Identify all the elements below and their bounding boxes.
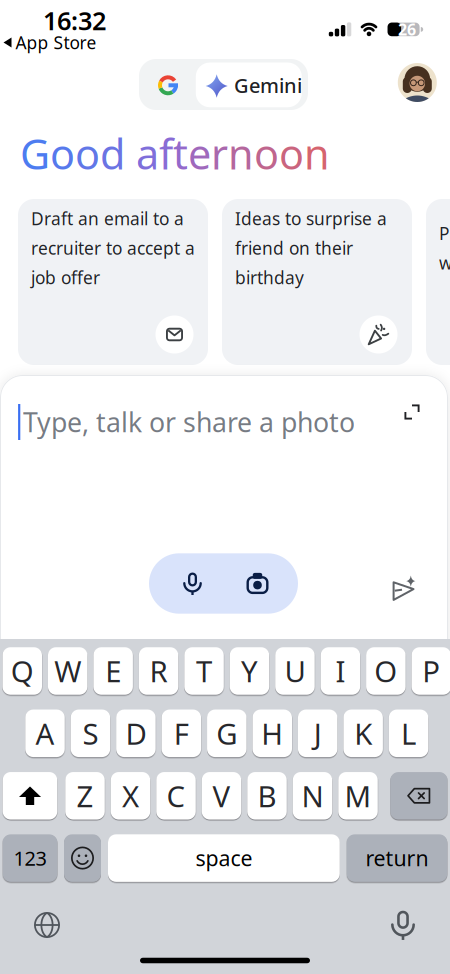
button[interactable]: E	[93, 647, 133, 695]
button[interactable]: C	[156, 772, 196, 819]
staticText: F	[174, 714, 189, 753]
staticText: space	[195, 844, 252, 872]
staticText: R	[150, 651, 168, 690]
button[interactable]: Shift	[3, 772, 57, 819]
staticText: Draft an email to a recruiter to accept …	[31, 207, 195, 289]
button[interactable]: Gemini model picker	[139, 59, 308, 110]
button[interactable]: Numbers	[3, 834, 57, 882]
staticText: Z	[76, 776, 93, 815]
staticText: r	[211, 126, 228, 181]
staticText: H	[261, 714, 283, 753]
staticText: e	[188, 126, 211, 181]
staticText: P	[422, 651, 440, 690]
staticText: I	[335, 651, 345, 690]
button[interactable]: K	[343, 709, 383, 757]
staticText: N	[301, 776, 323, 815]
button[interactable]: Ideas to surprise a friend on their birt…	[222, 199, 412, 365]
button[interactable]: L	[389, 709, 428, 757]
button[interactable]: Y	[230, 647, 269, 695]
staticText: Q	[11, 651, 34, 690]
button[interactable]: Profile	[398, 63, 437, 102]
button[interactable]: Open camera	[224, 553, 290, 613]
staticText: return	[365, 844, 428, 872]
button[interactable]: Expand input	[404, 404, 419, 419]
staticText: 16:32	[43, 4, 106, 37]
staticText: o	[254, 126, 279, 181]
button[interactable]: Voice input	[159, 553, 225, 613]
staticText: n	[304, 126, 330, 181]
staticText: n	[228, 126, 254, 181]
button[interactable]: Back to App Store	[3, 31, 96, 54]
staticText: 26	[398, 19, 416, 40]
button[interactable]: Delete	[390, 772, 447, 819]
staticText: Plan a game with friends	[439, 222, 450, 274]
staticText: U	[284, 651, 305, 690]
button[interactable]: Plan a game with friends	[426, 199, 450, 365]
button[interactable]: O	[366, 647, 406, 695]
staticText: L	[401, 714, 416, 753]
button[interactable]: D	[116, 709, 156, 757]
staticText: O	[374, 651, 397, 690]
button[interactable]: Dictate	[394, 913, 411, 936]
staticText: o	[279, 126, 304, 181]
staticText: G	[20, 126, 50, 181]
staticText: t	[173, 126, 188, 181]
button[interactable]: X	[111, 772, 150, 819]
staticText: B	[257, 776, 276, 815]
button[interactable]: H	[252, 709, 292, 757]
staticText: J	[314, 714, 322, 753]
button[interactable]: P	[412, 647, 450, 695]
button[interactable]: T	[184, 647, 224, 695]
staticText: Type, talk or share a photo	[23, 404, 355, 440]
button[interactable]: S	[71, 709, 110, 757]
staticText: K	[354, 714, 372, 753]
button[interactable]: F	[162, 709, 201, 757]
button[interactable]: G	[207, 709, 247, 757]
button[interactable]: Send	[392, 579, 416, 601]
staticText: C	[166, 776, 185, 815]
staticText: Ideas to surprise a friend on their birt…	[235, 207, 387, 289]
button[interactable]: N	[293, 772, 332, 819]
button[interactable]: Type, talk or share a photo	[1, 378, 401, 458]
staticText: E	[105, 651, 121, 690]
staticText: o	[75, 126, 100, 181]
button[interactable]: V	[202, 772, 241, 819]
staticText: d	[100, 126, 125, 181]
button[interactable]: Next keyboard	[34, 912, 60, 938]
staticText: f	[159, 126, 173, 181]
button[interactable]: M	[338, 772, 378, 819]
button[interactable]: W	[48, 647, 87, 695]
button[interactable]: Draft an email to a recruiter to accept …	[18, 199, 208, 365]
staticText: S	[82, 714, 98, 753]
button[interactable]: Space	[108, 834, 340, 882]
staticText: G	[216, 714, 237, 753]
staticText: Y	[241, 651, 258, 690]
staticText: 123	[13, 845, 46, 871]
button[interactable]: R	[139, 647, 178, 695]
staticText: o	[50, 126, 75, 181]
button[interactable]: Return	[347, 834, 447, 882]
staticText: a	[136, 126, 159, 181]
staticText: X	[122, 776, 139, 815]
button[interactable]: Z	[65, 772, 105, 819]
button[interactable]: B	[247, 772, 287, 819]
staticText: M	[344, 776, 371, 815]
staticText: D	[125, 714, 146, 753]
button[interactable]: Emoji	[64, 834, 101, 882]
staticText: App Store	[15, 31, 96, 54]
staticText: V	[212, 776, 230, 815]
button[interactable]: I	[321, 647, 360, 695]
button[interactable]: A	[25, 709, 65, 757]
staticText: T	[196, 651, 212, 690]
button[interactable]: J	[298, 709, 337, 757]
staticText: A	[35, 714, 54, 753]
button[interactable]: U	[275, 647, 315, 695]
button[interactable]: Q	[2, 647, 42, 695]
staticText: Gemini	[234, 72, 302, 99]
staticText: W	[54, 651, 81, 690]
